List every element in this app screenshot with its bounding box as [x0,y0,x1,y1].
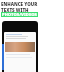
staticText: ENHANCE YOUR [1,1,38,7]
staticText: TEXTS WITH [1,7,29,13]
staticText: PHOTOS/VIDEOS [2,12,37,17]
